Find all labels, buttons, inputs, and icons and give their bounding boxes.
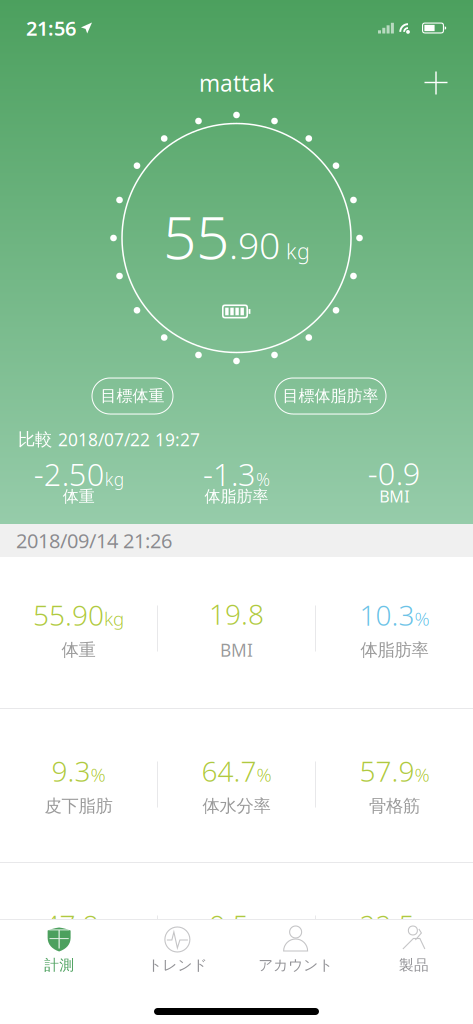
button[interactable]: Add xyxy=(413,60,459,106)
button[interactable]: トレンド xyxy=(118,919,236,978)
button[interactable]: 製品 xyxy=(355,919,473,978)
staticText: kg xyxy=(105,468,124,491)
staticText: % xyxy=(256,762,271,787)
staticText: 計測 xyxy=(44,956,74,974)
staticText: 目標体重 xyxy=(100,386,164,406)
staticText: -2.50 xyxy=(34,454,105,494)
staticText: 内臓脂肪 xyxy=(44,949,112,971)
staticText: 体水分率 xyxy=(202,795,270,817)
staticText: 比較 xyxy=(18,429,52,450)
staticText: % xyxy=(414,606,429,631)
staticText: -1.3 xyxy=(203,454,256,494)
staticText: 2018/07/22 19:27 xyxy=(58,428,200,451)
staticText: BMI xyxy=(220,639,253,662)
button[interactable]: 目標体重 xyxy=(92,378,173,414)
staticText: 22.5 xyxy=(359,906,414,943)
staticText: 19.8 xyxy=(209,595,264,633)
staticText: .90 xyxy=(229,220,280,270)
staticText: 体脂肪率 xyxy=(204,486,268,506)
staticText: % xyxy=(248,916,263,941)
staticText: トレンド xyxy=(147,956,207,974)
staticText: 製品 xyxy=(399,956,429,974)
staticText: 55 xyxy=(163,197,229,275)
staticText: kg xyxy=(280,237,310,265)
staticText: 皮下脂肪 xyxy=(44,795,112,817)
staticText: 57.9 xyxy=(359,752,414,789)
button[interactable]: 計測 xyxy=(0,919,118,978)
staticText: 47.8 xyxy=(43,906,98,943)
staticText: 体重 xyxy=(61,639,95,661)
staticText: % xyxy=(256,468,270,491)
staticText: 10.3 xyxy=(359,596,414,633)
staticText: 目標体脂肪率 xyxy=(282,386,378,406)
staticText: 体脂肪率 xyxy=(360,639,428,661)
staticText: BMI xyxy=(379,486,409,507)
staticText: 体重 xyxy=(63,486,95,506)
staticText: mattak xyxy=(199,68,274,98)
button[interactable]: アカウント xyxy=(236,919,355,978)
staticText: kg xyxy=(104,606,124,631)
staticText: % xyxy=(414,916,429,941)
staticText: % xyxy=(414,762,429,787)
staticText: 9.5 xyxy=(209,906,248,943)
staticText: 基礎代謝 xyxy=(360,949,428,971)
staticText: アカウント xyxy=(258,956,333,974)
staticText: 64.7 xyxy=(201,752,256,789)
staticText: % xyxy=(98,916,113,941)
staticText: % xyxy=(90,762,105,787)
staticText: 55.90 xyxy=(33,596,104,633)
staticText: 骨格筋 xyxy=(369,795,420,817)
staticText: 21:56 xyxy=(26,15,76,41)
staticText: 9.3 xyxy=(51,752,90,789)
staticText: -0.9 xyxy=(368,453,421,494)
button[interactable]: 目標体脂肪率 xyxy=(275,378,386,414)
staticText: 2018/09/14 21:26 xyxy=(16,527,172,554)
